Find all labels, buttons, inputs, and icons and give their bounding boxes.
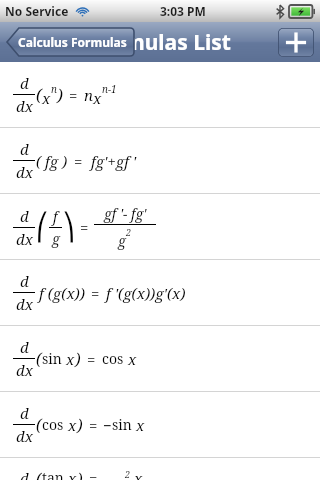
staticText: ( fg ) [36,151,68,171]
staticText: dx [16,360,33,380]
staticText: f '(g(x))g'(x) [106,283,186,303]
staticText: dx [16,229,33,249]
staticText: cos [102,349,124,368]
staticText: ⎞ [62,212,75,242]
staticText: = [69,85,78,105]
staticText: ( [36,83,42,106]
staticText: dx [16,294,33,314]
staticText: 2 [126,226,132,238]
staticText: x [68,415,77,435]
staticText: = [91,283,100,303]
button[interactable]: d [0,392,320,457]
staticText: d [20,271,29,291]
staticText: = [80,217,89,237]
staticText: cos [42,415,64,434]
staticText: x [68,468,77,480]
button[interactable]: d [0,458,320,480]
staticText: dx [16,96,33,116]
staticText: x [136,415,145,435]
staticText: d [20,403,29,423]
staticText: x [134,468,143,480]
staticText: ) [77,414,83,436]
button[interactable]: d [0,326,320,391]
staticText: = [89,415,98,435]
button[interactable]: d [0,128,320,193]
staticText: g [52,229,60,248]
staticText: No Service [5,3,69,19]
staticText: ( [36,468,42,480]
staticText: fg'+gf ' [91,151,137,171]
staticText: 2 [125,468,131,480]
staticText: d [20,468,29,480]
staticText: Calculus Formulas [18,34,127,50]
staticText: = [89,468,98,480]
staticText: x [66,349,75,369]
staticText: sin [42,349,62,368]
staticText: d [20,139,29,159]
staticText: ⎛ [36,212,49,242]
staticText: d [20,206,29,226]
staticText: 3:03 PM [160,3,206,19]
staticText: ( [36,348,42,370]
staticText: d [20,337,29,357]
staticText: − [103,415,112,435]
staticText: = [74,151,83,171]
button[interactable]: d [0,62,320,127]
staticText: = [87,349,96,369]
button[interactable]: Add formula [278,28,314,57]
staticText: ) [77,468,83,480]
staticText: f [53,207,58,226]
staticText: dx [16,426,33,446]
staticText: ( [36,414,42,436]
staticText: d [20,73,29,93]
staticText: g [118,231,126,250]
button[interactable]: d [0,260,320,325]
staticText: x [42,88,51,108]
staticText: x [128,349,137,369]
button[interactable]: Calculus Formulas [6,28,134,56]
staticText: gf '− fg' [104,204,147,223]
staticText: ) [75,348,81,370]
staticText: x [93,88,102,108]
staticText: dx [16,162,33,182]
staticText: Formulas List [90,28,231,57]
button[interactable]: d [0,194,320,259]
staticText: ) [57,83,63,106]
staticText: n [84,85,93,105]
staticText: n [51,82,57,96]
staticText: n−1 [102,82,117,96]
staticText: f (g(x)) [39,283,85,303]
staticText: sin [112,415,132,434]
staticText: tan [42,468,64,480]
